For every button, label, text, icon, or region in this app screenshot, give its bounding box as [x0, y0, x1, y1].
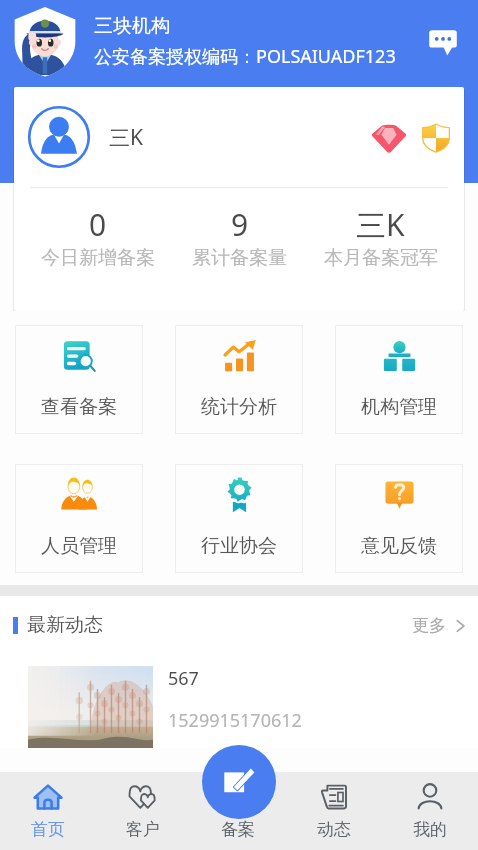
staticText: 三块机构: [94, 14, 170, 38]
staticText: 最新动态: [27, 613, 103, 637]
button[interactable]: 人员管理: [15, 464, 143, 573]
button[interactable]: 客户: [95, 772, 190, 850]
staticText: 567: [168, 666, 199, 691]
button[interactable]: Messages: [422, 20, 464, 62]
button[interactable]: 动态: [286, 772, 382, 850]
button[interactable]: 统计分析: [175, 325, 303, 434]
button[interactable]: 行业协会: [175, 464, 303, 573]
staticText: 9: [231, 204, 249, 245]
staticText: 动态: [317, 819, 351, 840]
staticText: 累计备案量: [192, 246, 287, 270]
staticText: 本月备案冠军: [324, 246, 438, 270]
button[interactable]: 机构管理: [335, 325, 463, 434]
staticText: 客户: [126, 819, 160, 840]
button[interactable]: 查看备案: [15, 325, 143, 434]
staticText: 意见反馈: [361, 534, 437, 558]
staticText: 三K: [356, 204, 405, 245]
staticText: 备案: [221, 819, 255, 840]
staticText: 公安备案授权编码：POLSAIUADF123: [94, 44, 396, 69]
staticText: 0: [89, 204, 107, 245]
staticText: 我的: [413, 819, 447, 840]
staticText: 更多: [412, 615, 446, 636]
button[interactable]: 意见反馈: [335, 464, 463, 573]
staticText: 今日新增备案: [41, 246, 155, 270]
button[interactable]: 567: [28, 666, 478, 748]
staticText: 查看备案: [41, 395, 117, 419]
staticText: 首页: [31, 819, 65, 840]
button[interactable]: 我的: [382, 772, 478, 850]
staticText: 三K: [109, 123, 143, 152]
staticText: 人员管理: [41, 534, 117, 558]
button[interactable]: 更多: [412, 615, 467, 636]
staticText: 统计分析: [201, 395, 277, 419]
staticText: 行业协会: [201, 534, 277, 558]
button[interactable]: 9: [169, 188, 310, 286]
button[interactable]: 备案: [190, 772, 286, 850]
button[interactable]: 首页: [0, 772, 95, 850]
staticText: 机构管理: [361, 395, 437, 419]
button[interactable]: 0: [27, 188, 169, 286]
button[interactable]: 三K: [310, 188, 451, 286]
button[interactable]: New record: [202, 745, 276, 819]
staticText: 1529915170612: [168, 708, 302, 733]
